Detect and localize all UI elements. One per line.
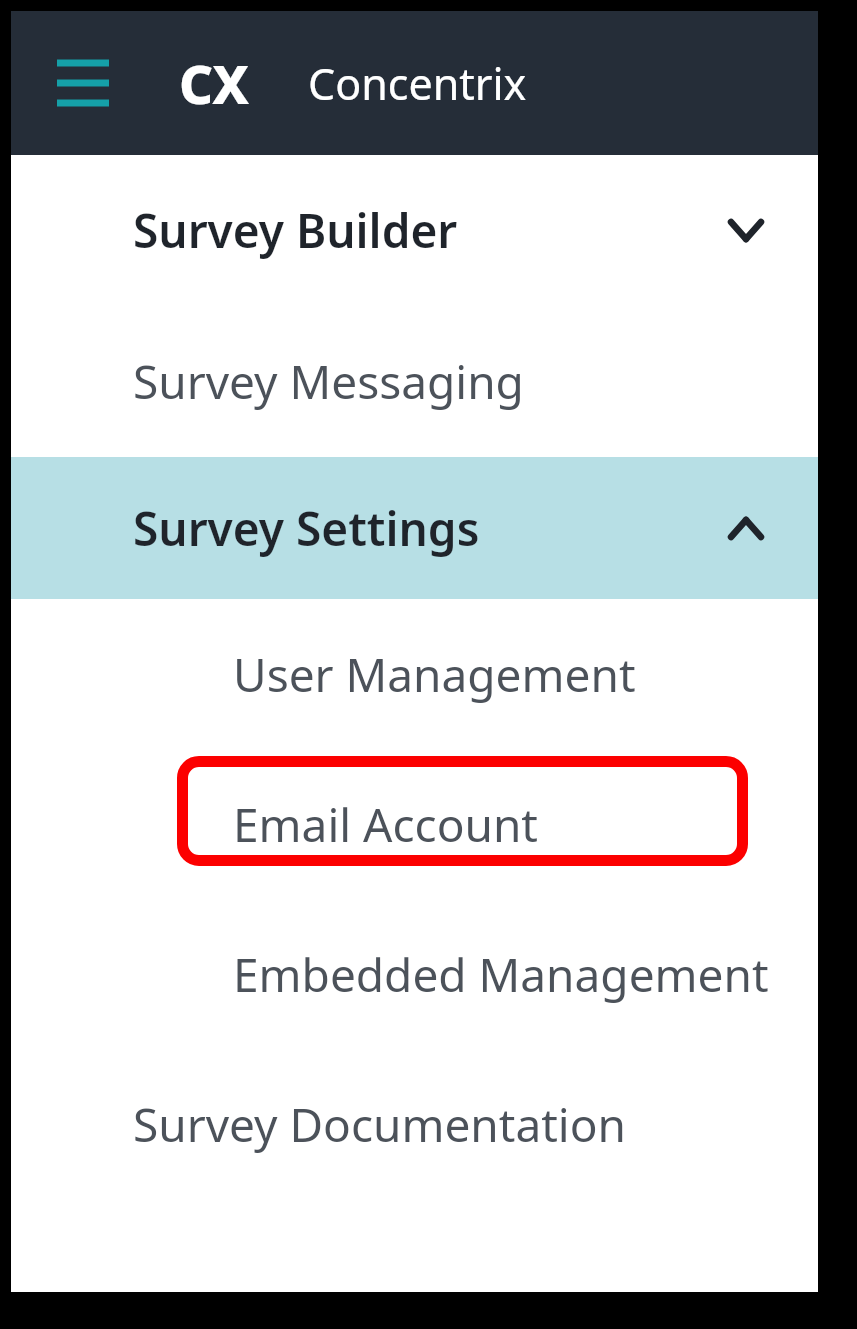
staticText: Survey Documentation [133,1093,626,1156]
button[interactable]: Survey Messaging [11,305,818,457]
staticText: User Management [233,643,636,706]
button[interactable]: Survey Settings [11,457,818,599]
button[interactable]: Open navigation menu [45,41,121,125]
staticText: Survey Builder [133,199,458,262]
staticText: Concentrix [308,54,527,113]
button[interactable]: Collapse [714,496,778,560]
button[interactable]: Survey Builder [11,155,818,305]
button[interactable]: Survey Documentation [11,1049,818,1199]
button[interactable]: Email Account [11,749,818,899]
staticText: Embedded Management [233,943,769,1006]
button[interactable]: Embedded Management [11,899,818,1049]
staticText: Survey Messaging [133,350,524,413]
button[interactable]: Expand [714,198,778,262]
staticText: Survey Settings [133,497,480,560]
staticText: CX [179,47,248,119]
staticText: Email Account [233,793,538,856]
button[interactable]: User Management [11,599,818,749]
